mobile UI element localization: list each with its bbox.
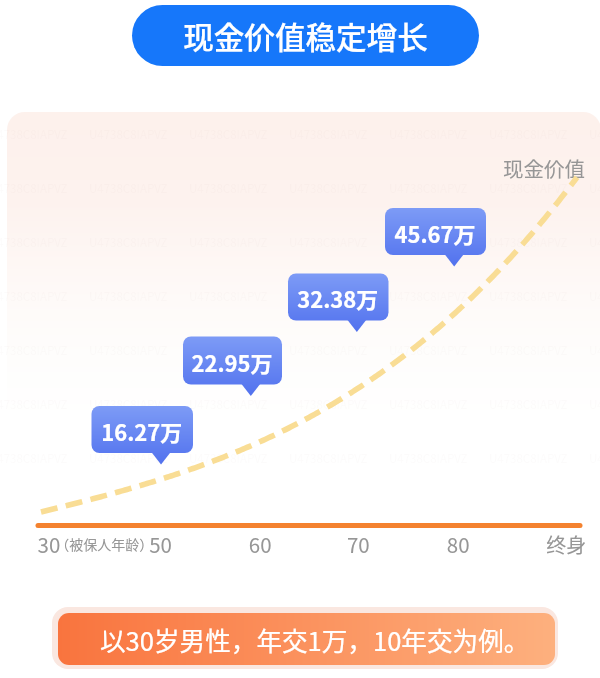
staticText: 现金价值稳定增长 bbox=[183, 14, 428, 58]
button[interactable]: 现金价值稳定增长 bbox=[132, 5, 479, 66]
staticText: 以30岁男性，年交1万，10年交为例。 bbox=[100, 621, 530, 658]
button[interactable]: 以30岁男性，年交1万，10年交为例。 bbox=[58, 613, 555, 665]
